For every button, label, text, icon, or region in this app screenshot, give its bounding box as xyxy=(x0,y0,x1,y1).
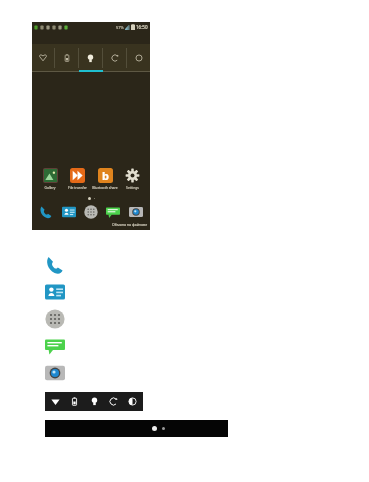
button[interactable]: b xyxy=(92,168,118,190)
staticText: Gallery xyxy=(44,185,56,190)
button[interactable]: Camera xyxy=(126,204,146,220)
staticText: 16:50 xyxy=(136,24,148,30)
button[interactable]: File transfer xyxy=(64,168,90,190)
staticText: Bluetooth share xyxy=(92,185,118,190)
staticText: File transfer xyxy=(68,185,87,190)
button[interactable]: Wi-Fi xyxy=(47,392,64,411)
button[interactable]: Contacts xyxy=(45,282,65,302)
button[interactable]: Phone xyxy=(36,204,56,220)
button[interactable]: Battery xyxy=(55,44,78,72)
button[interactable]: Camera xyxy=(45,363,65,383)
staticText: Settings xyxy=(126,185,139,190)
button[interactable]: Apps xyxy=(45,309,65,329)
button[interactable]: Flashlight xyxy=(86,392,103,411)
staticText: 57% xyxy=(116,25,124,30)
button[interactable]: Rotate xyxy=(105,392,122,411)
button[interactable]: Sync xyxy=(103,44,126,72)
button[interactable]: Contacts xyxy=(59,204,79,220)
button[interactable]: Apps xyxy=(81,204,101,220)
staticText: b xyxy=(102,168,109,183)
button[interactable]: Brightness xyxy=(124,392,141,411)
button[interactable]: Power xyxy=(127,44,150,72)
button[interactable]: Battery xyxy=(66,392,83,411)
button[interactable]: Phone xyxy=(45,255,65,275)
button[interactable]: Messaging xyxy=(103,204,123,220)
staticText: Обмяна на файлове xyxy=(112,222,148,227)
button[interactable]: Flashlight xyxy=(79,44,102,72)
button[interactable]: Messaging xyxy=(45,336,65,356)
button[interactable]: Settings xyxy=(119,168,145,190)
button[interactable]: Favourites xyxy=(32,44,54,72)
button[interactable]: Gallery xyxy=(37,168,63,190)
